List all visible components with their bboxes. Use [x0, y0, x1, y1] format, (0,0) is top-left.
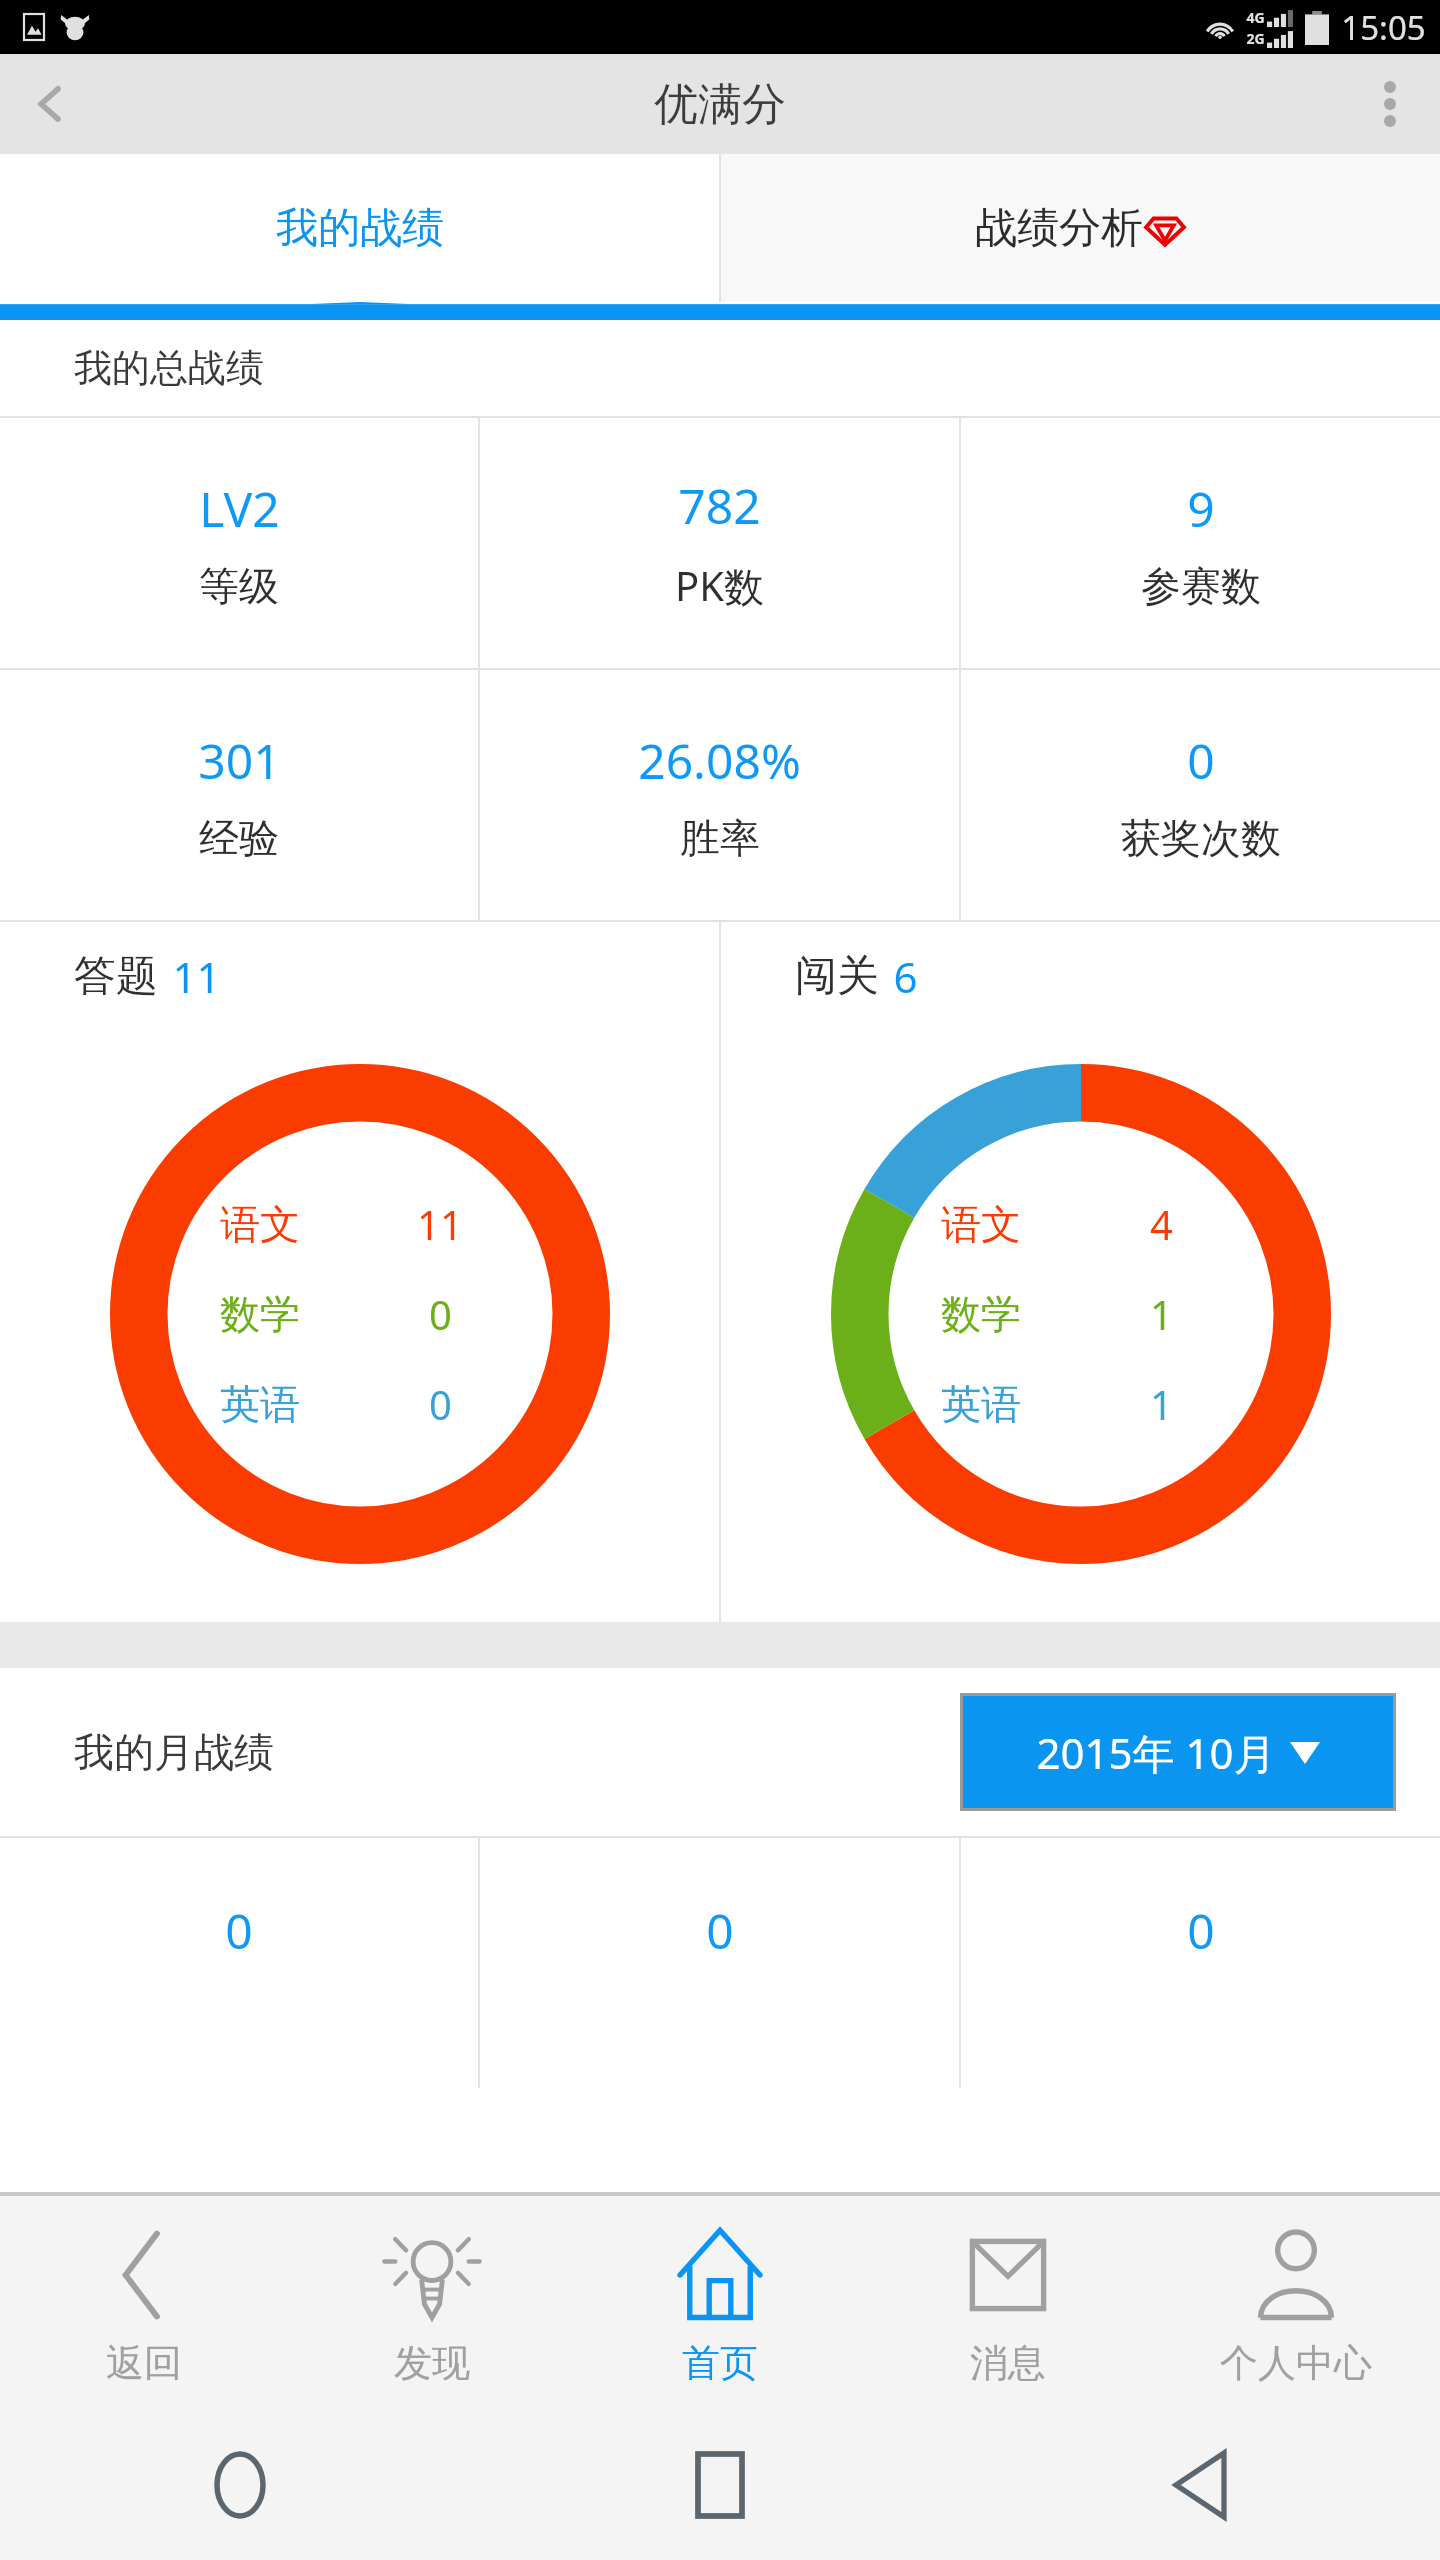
staticText: 语文 — [220, 1199, 300, 1249]
staticText: 胜率 — [680, 813, 760, 863]
staticText: 0 — [1187, 1898, 1215, 1963]
staticText: 0 — [706, 1898, 734, 1963]
staticText: 0 — [1187, 728, 1215, 793]
staticText: 0 — [429, 1287, 452, 1341]
button[interactable]: 个人中心 — [1152, 2196, 1440, 2410]
staticText: 4 — [1150, 1197, 1173, 1251]
staticText: 0 — [225, 1898, 253, 1963]
staticText: 11 — [172, 948, 221, 1005]
button[interactable]: 首页 — [576, 2196, 864, 2410]
staticText: 2G — [1246, 29, 1265, 48]
staticText: LV2 — [199, 476, 280, 541]
button[interactable]: Recent apps — [480, 2410, 960, 2560]
staticText: 26.08% — [638, 728, 801, 793]
staticText: 0 — [429, 1377, 452, 1431]
staticText: 我的月战绩 — [74, 1727, 274, 1777]
staticText: 1 — [1150, 1377, 1173, 1431]
staticText: 我的战绩 — [276, 202, 444, 255]
button[interactable]: More options — [1340, 54, 1440, 154]
staticText: 首页 — [682, 2339, 758, 2387]
staticText: 英语 — [941, 1379, 1021, 1429]
staticText: 闯关 — [795, 950, 879, 1003]
button[interactable]: Home — [0, 2410, 480, 2560]
staticText: 发现 — [394, 2339, 470, 2387]
button[interactable]: 我的战绩 — [0, 154, 719, 302]
button[interactable]: 返回 — [0, 2196, 288, 2410]
staticText: 4G — [1246, 8, 1265, 27]
button[interactable]: 2015年 10月 — [960, 1693, 1396, 1811]
button[interactable]: 战绩分析 — [721, 154, 1440, 302]
staticText: 语文 — [941, 1199, 1021, 1249]
staticText: 11 — [417, 1197, 463, 1251]
staticText: 答题 — [74, 950, 158, 1003]
staticText: 消息 — [970, 2339, 1046, 2387]
staticText: 返回 — [106, 2339, 182, 2387]
staticText: 数学 — [941, 1289, 1021, 1339]
staticText: 战绩分析 — [975, 202, 1143, 255]
button[interactable]: 发现 — [288, 2196, 576, 2410]
button[interactable]: Back — [960, 2410, 1440, 2560]
staticText: 6 — [893, 948, 918, 1005]
staticText: 英语 — [220, 1379, 300, 1429]
staticText: 数学 — [220, 1289, 300, 1339]
staticText: 2015年 10月 — [1036, 1724, 1276, 1781]
staticText: 参赛数 — [1141, 561, 1261, 611]
button[interactable]: Back — [0, 54, 100, 154]
staticText: 301 — [198, 728, 281, 793]
staticText: PK数 — [675, 558, 764, 613]
staticText: 等级 — [199, 561, 279, 611]
staticText: 15:05 — [1341, 5, 1426, 50]
staticText: 9 — [1187, 476, 1215, 541]
button[interactable]: 消息 — [864, 2196, 1152, 2410]
staticText: 获奖次数 — [1121, 813, 1281, 863]
staticText: 我的总战绩 — [74, 344, 264, 392]
staticText: 个人中心 — [1220, 2339, 1372, 2387]
staticText: 1 — [1150, 1287, 1173, 1341]
staticText: 优满分 — [654, 77, 786, 132]
staticText: 782 — [678, 473, 761, 538]
staticText: 经验 — [199, 813, 279, 863]
